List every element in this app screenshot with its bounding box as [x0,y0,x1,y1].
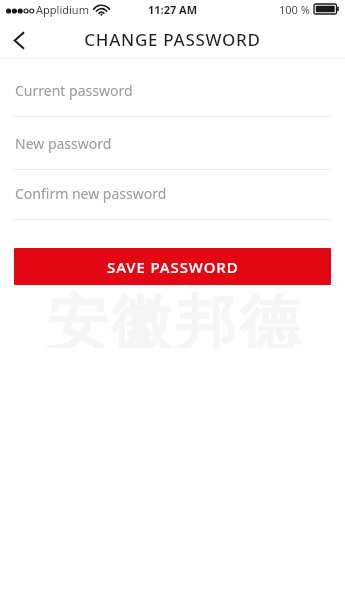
staticText: Current password [15,81,133,100]
staticText: 安徽邦德 [45,286,301,348]
staticText: SAVE PASSWORD [107,257,239,277]
staticText: 11:27 AM [148,2,198,17]
button[interactable]: Back [0,22,41,58]
button[interactable]: Current password [0,58,345,117]
staticText: New password [15,134,112,153]
staticText: Applidium [36,2,89,17]
button[interactable]: SAVE PASSWORD [14,248,331,285]
staticText: Confirm new password [15,184,167,203]
button[interactable]: Confirm new password [0,170,345,220]
staticText: CHANGE PASSWORD [84,28,261,51]
staticText: 100 % [279,2,310,17]
button[interactable]: New password [0,117,345,170]
